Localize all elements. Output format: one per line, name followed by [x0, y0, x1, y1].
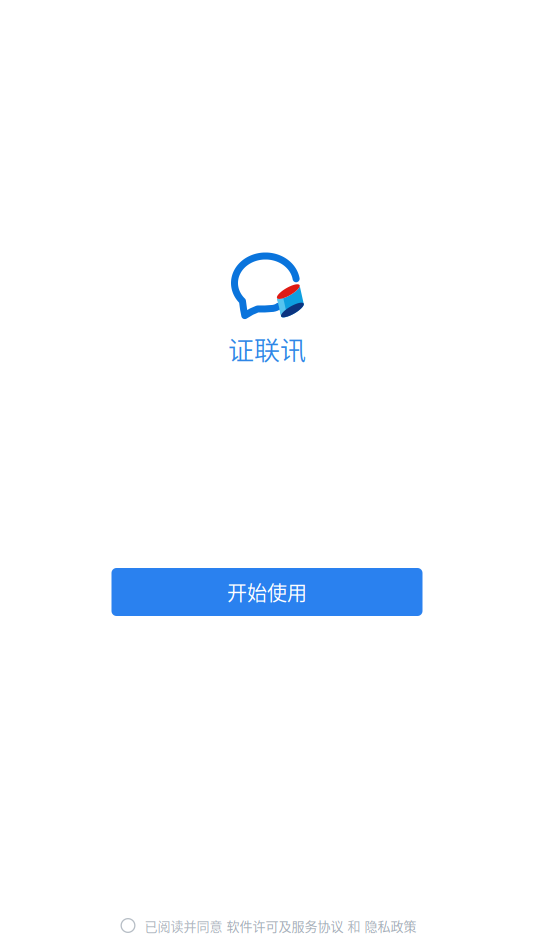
staticText: 隐私政策 — [364, 916, 416, 935]
staticText: 和 — [347, 916, 360, 935]
staticText: 软件许可及服务协议 — [226, 916, 343, 935]
staticText: 证联讯 — [228, 330, 306, 368]
button[interactable]: 软件许可及服务协议 — [226, 916, 343, 935]
staticText: 已阅读并同意 — [144, 916, 222, 935]
button[interactable]: 同意用户协议 — [117, 915, 138, 936]
staticText: 开始使用 — [227, 577, 307, 606]
button[interactable]: 隐私政策 — [364, 916, 416, 935]
button[interactable]: 开始使用 — [111, 568, 422, 616]
